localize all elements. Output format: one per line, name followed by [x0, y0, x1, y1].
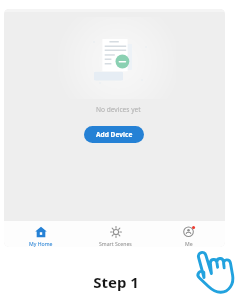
button[interactable]: Me: [153, 221, 225, 247]
button[interactable]: Smart Scenes: [78, 221, 153, 247]
other: Tap here: [195, 248, 238, 295]
staticText: Step 1: [93, 272, 139, 292]
button[interactable]: Add Device: [84, 126, 144, 143]
staticText: My Home: [29, 240, 53, 247]
staticText: Me: [185, 240, 193, 247]
other: No devices illustration: [88, 33, 152, 86]
staticText: No devices yet: [96, 105, 141, 114]
button[interactable]: My Home: [4, 221, 78, 247]
staticText: Smart Scenes: [99, 240, 132, 247]
staticText: Add Device: [96, 130, 133, 139]
